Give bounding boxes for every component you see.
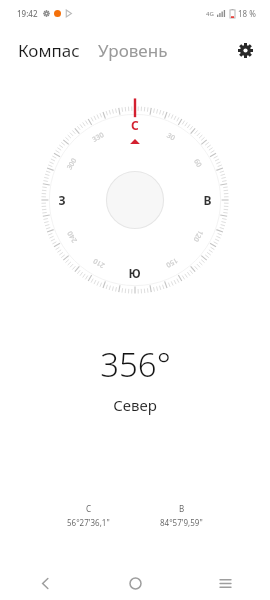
staticText: 84°57'9,59" <box>160 517 203 528</box>
staticText: 18 % <box>238 8 256 19</box>
staticText: Компас <box>18 39 80 62</box>
staticText: 4G <box>206 10 214 18</box>
button[interactable]: Recent apps <box>180 566 270 600</box>
staticText: С <box>86 503 92 514</box>
staticText: Уровень <box>98 39 168 62</box>
button[interactable]: Компас <box>16 35 82 66</box>
staticText: Север <box>113 395 157 415</box>
button[interactable]: Settings <box>232 37 258 63</box>
staticText: 56°27'36,1" <box>67 517 110 528</box>
staticText: 19:42 <box>17 8 38 19</box>
button[interactable]: Home <box>90 566 180 600</box>
button[interactable]: Back <box>0 566 90 600</box>
button[interactable]: Уровень <box>96 35 170 66</box>
staticText: 356° <box>100 342 171 387</box>
staticText: В <box>179 503 185 514</box>
